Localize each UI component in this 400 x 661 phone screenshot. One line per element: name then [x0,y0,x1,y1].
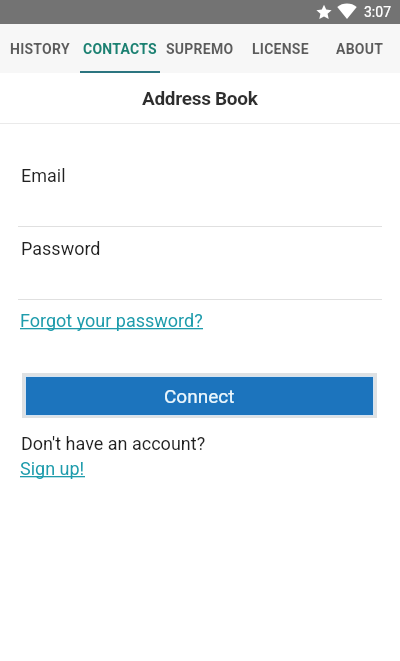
button[interactable]: Email [21,124,400,226]
staticText: HISTORY [10,41,70,57]
button[interactable]: Forgot your password? [20,310,203,331]
button[interactable]: Password [21,227,400,299]
staticText: Connect [164,385,235,407]
staticText: CONTACTS [83,41,157,57]
button[interactable]: Connect [26,377,373,415]
button[interactable]: Sign up! [20,458,85,479]
button[interactable]: ABOUT [320,24,400,73]
staticText: 3:07 [364,4,391,20]
other: Wi-Fi signal [339,4,355,19]
staticText: Forgot your password? [20,310,203,331]
other: Starred [316,4,332,20]
button[interactable]: HISTORY [0,24,80,73]
staticText: ABOUT [336,41,384,57]
staticText: SUPREMO [166,41,234,57]
staticText: Don't have an account? [21,433,206,454]
staticText: LICENSE [252,41,309,57]
staticText: Email [21,165,66,186]
button[interactable]: LICENSE [240,24,320,73]
staticText: Password [21,238,101,259]
button[interactable]: CONTACTS [80,24,160,73]
staticText: Address Book [142,87,258,109]
button[interactable]: SUPREMO [160,24,240,73]
staticText: Sign up! [20,458,85,479]
